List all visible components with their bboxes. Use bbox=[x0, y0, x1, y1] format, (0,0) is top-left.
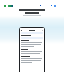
button[interactable]: Google Logo bbox=[8, 5, 13, 7]
